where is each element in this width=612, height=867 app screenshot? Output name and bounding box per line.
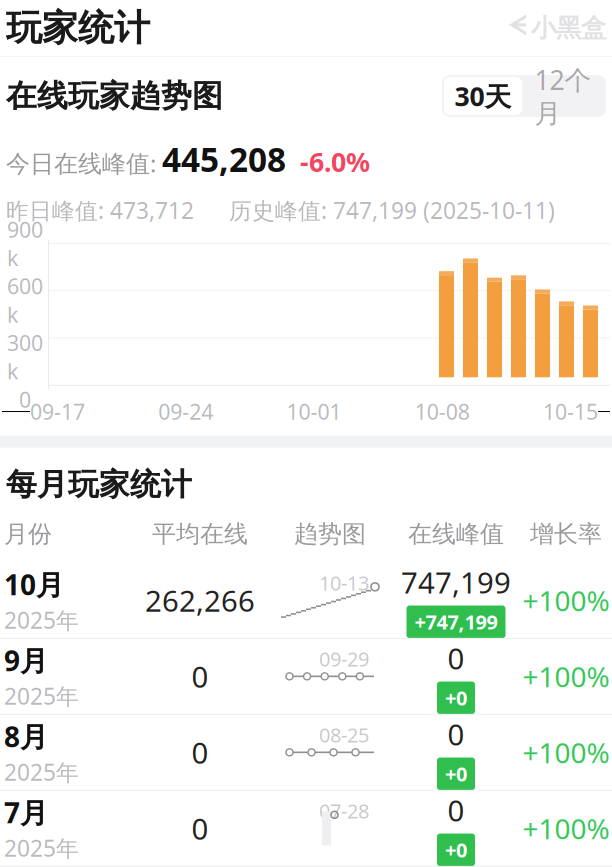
staticText: 每月玩家统计 [6, 466, 192, 503]
staticText: 0 [447, 791, 464, 830]
staticText: 0 [447, 715, 464, 754]
staticText: 月份 [4, 519, 52, 549]
staticText: 平均在线 [152, 519, 248, 549]
staticText: 30天 [454, 78, 511, 114]
button[interactable]: 小黑盒 [508, 12, 606, 43]
staticText: +0 [445, 760, 467, 787]
staticText: +100% [522, 734, 609, 771]
staticText: 昨日峰值: 473,712 [6, 195, 194, 225]
staticText: 0 [191, 657, 208, 696]
staticText: 445,208 [162, 137, 286, 181]
staticText: 2025年 [4, 681, 79, 711]
staticText: 2025年 [4, 833, 79, 863]
staticText: +0 [445, 684, 467, 711]
staticText: 10-13 [319, 569, 369, 596]
staticText: 0 [191, 809, 208, 848]
staticText: 历史峰值: 747,199 (2025-10-11) [194, 195, 555, 225]
staticText: 在线峰值 [408, 519, 504, 549]
staticText: 09-29 [319, 645, 369, 672]
staticText: 0 [191, 733, 208, 772]
staticText: +0 [445, 836, 467, 863]
staticText: 7月 [4, 794, 48, 831]
staticText: 300k [7, 328, 43, 385]
staticText: 08-25 [319, 721, 369, 748]
staticText: 600k [7, 272, 43, 329]
button[interactable]: 9月 [0, 639, 612, 714]
button[interactable]: 10月 [0, 563, 612, 638]
staticText: 0 [447, 639, 464, 678]
button[interactable]: 30天 [444, 77, 522, 115]
staticText: ᗕ [508, 16, 526, 40]
staticText: 9月 [4, 642, 48, 679]
staticText: 在线玩家趋势图 [6, 77, 223, 115]
staticText: 12个月 [534, 62, 591, 130]
staticText: 747,199 [401, 563, 511, 602]
button[interactable]: 8月 [0, 715, 612, 790]
staticText: 10-01 [286, 397, 341, 426]
staticText: 0 [19, 385, 31, 413]
staticText: 玩家统计 [6, 6, 150, 50]
staticText: 今日在线峰值: [6, 147, 162, 179]
staticText: 10-15 [543, 397, 598, 426]
staticText: 07-28 [319, 797, 369, 824]
button[interactable]: 7月 [0, 791, 612, 866]
staticText: +100% [522, 658, 609, 695]
staticText: +100% [522, 810, 609, 847]
staticText: 10月 [4, 566, 64, 603]
button[interactable]: 12个月 [522, 77, 604, 115]
staticText: +747,199 [414, 608, 497, 635]
staticText: 趋势图 [294, 519, 366, 549]
staticText: 增长率 [530, 519, 602, 549]
staticText: -6.0% [286, 144, 370, 179]
staticText: 小黑盒 [531, 12, 606, 43]
staticText: 2025年 [4, 605, 79, 635]
staticText: 09-17 [30, 397, 85, 426]
staticText: 09-24 [158, 397, 213, 426]
staticText: 262,266 [145, 581, 255, 620]
staticText: 900k [7, 215, 43, 272]
staticText: 8月 [4, 718, 48, 755]
staticText: 2025年 [4, 757, 79, 787]
staticText: 10-08 [415, 397, 470, 426]
staticText: +100% [522, 582, 609, 619]
